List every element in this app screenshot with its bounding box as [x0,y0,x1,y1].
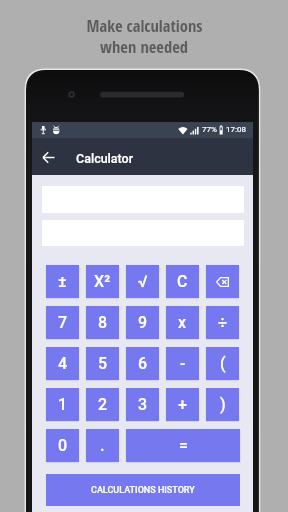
staticText: + [178,395,187,414]
staticText: C [177,272,188,291]
staticText: ) [220,395,226,414]
button[interactable]: CALCULATIONS HISTORY [46,474,240,506]
staticText: CALCULATIONS HISTORY [91,485,195,496]
staticText: . [100,436,105,455]
staticText: X² [94,272,111,291]
button[interactable]: 6 [126,347,159,380]
button[interactable]: ± [46,265,79,298]
staticText: 4 [58,354,68,373]
staticText: Make calculations [86,14,203,36]
staticText: ± [58,272,67,291]
staticText: √ [138,272,148,291]
staticText: x [178,313,187,332]
button[interactable]: √ [126,265,159,298]
button[interactable]: 1 [46,388,79,421]
button[interactable]: 4 [46,347,79,380]
button[interactable]: X² [86,265,119,298]
staticText: 9 [138,313,148,332]
other: Backspace [216,277,229,287]
button[interactable]: Backspace [206,265,239,298]
staticText: 0 [58,436,68,455]
button[interactable]: 9 [126,306,159,339]
button[interactable]: ÷ [206,306,239,339]
button[interactable]: C [166,265,199,298]
staticText: 6 [138,354,148,373]
button[interactable]: = [126,429,240,462]
staticText: 1 [58,395,68,414]
button[interactable]: Back [36,145,60,169]
staticText: ÷ [218,313,228,332]
button[interactable]: ) [206,388,239,421]
button[interactable]: x [166,306,199,339]
button[interactable]: + [166,388,199,421]
button[interactable]: . [86,429,119,462]
button[interactable]: 8 [86,306,119,339]
button[interactable]: ( [206,347,239,380]
staticText: 5 [98,354,108,373]
staticText: ( [220,354,226,373]
button[interactable]: - [166,347,199,380]
staticText: 2 [98,395,108,414]
staticText: when needed [100,35,188,57]
button[interactable]: 2 [86,388,119,421]
button[interactable]: 0 [46,429,79,462]
staticText: 77% [202,125,217,134]
staticText: 8 [98,313,108,332]
staticText: = [179,436,188,455]
button[interactable]: 5 [86,347,119,380]
button[interactable]: 3 [126,388,159,421]
staticText: - [180,354,186,373]
button[interactable]: 7 [46,306,79,339]
staticText: 7 [58,313,68,332]
staticText: 17:08 [226,125,246,134]
staticText: Calculator [76,151,134,166]
staticText: 3 [138,395,148,414]
